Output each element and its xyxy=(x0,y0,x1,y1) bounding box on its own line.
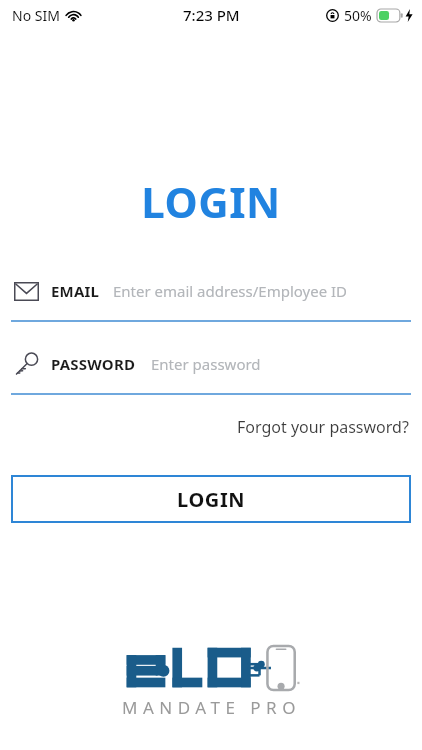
staticText: PASSWORD xyxy=(51,354,136,374)
staticText: MANDATE PRO xyxy=(122,696,301,719)
staticText: Enter password xyxy=(151,354,261,374)
staticText: 50% xyxy=(344,6,372,25)
staticText: No SIM xyxy=(12,6,60,25)
staticText: Forgot your password? xyxy=(237,416,409,438)
staticText: Enter email address/Employee ID xyxy=(113,281,348,301)
button[interactable]: PASSWORD xyxy=(0,347,422,395)
staticText: LOGIN xyxy=(177,486,246,513)
button[interactable]: LOGIN xyxy=(11,475,411,523)
button[interactable]: EMAIL xyxy=(0,274,422,322)
staticText: EMAIL xyxy=(51,281,100,301)
staticText: 7:23 PM xyxy=(183,5,240,25)
staticText: LOGIN xyxy=(0,173,422,230)
button[interactable]: Forgot your password? xyxy=(235,412,411,442)
